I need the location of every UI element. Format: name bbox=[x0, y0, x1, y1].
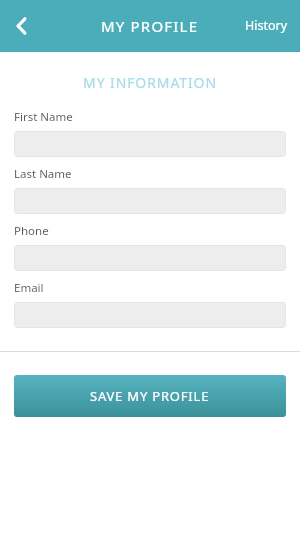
staticText: Last Name bbox=[14, 166, 72, 182]
button[interactable]: Back bbox=[0, 0, 44, 51]
staticText: MY INFORMATION bbox=[0, 73, 300, 92]
staticText: SAVE MY PROFILE bbox=[90, 387, 210, 405]
button[interactable]: History bbox=[233, 0, 300, 51]
staticText: First Name bbox=[14, 109, 73, 125]
staticText: Email bbox=[14, 280, 44, 296]
staticText: MY PROFILE bbox=[101, 16, 199, 36]
button[interactable]: SAVE MY PROFILE bbox=[14, 375, 286, 417]
staticText: Phone bbox=[14, 223, 49, 239]
staticText: History bbox=[245, 17, 288, 34]
